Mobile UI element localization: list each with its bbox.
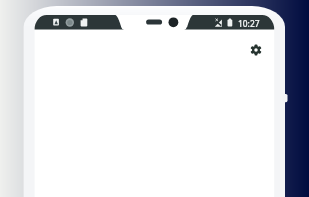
button[interactable]: Settings (244, 38, 268, 62)
staticText: 10:27 (238, 18, 260, 29)
